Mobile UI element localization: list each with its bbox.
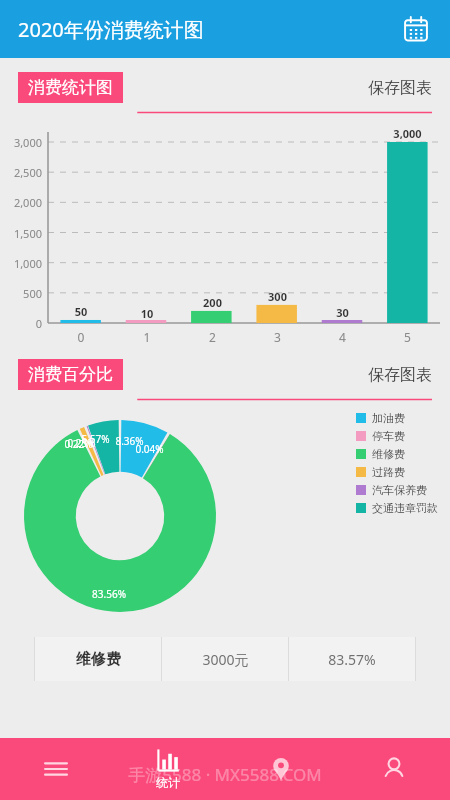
staticText: 过路费 [372,465,405,479]
button[interactable]: 消费统计图 [28,77,113,98]
button[interactable]: 消费百分比 [28,364,113,385]
staticText: 统计 [156,775,180,790]
staticText: 加油费 [372,411,405,425]
staticText: 2,000 [0,195,42,210]
staticText: 3,000 [375,126,440,141]
button[interactable]: Calendar [396,9,436,49]
staticText: 5 [375,329,440,345]
staticText: 83.56% [92,587,126,601]
staticText: 交通违章罚款 [372,501,438,515]
staticText: 保存图表 [368,365,432,385]
staticText: 2,500 [0,165,42,180]
staticText: 0 [0,316,42,331]
staticText: 50 [48,304,114,319]
staticText: 30 [310,305,375,320]
staticText: 0.25% [67,436,96,450]
staticText: 消费统计图 [28,77,113,98]
button[interactable]: Menu [0,738,112,800]
staticText: 3 [245,329,310,345]
staticText: 0.04% [135,442,164,456]
button[interactable]: 维修费 [34,637,416,681]
staticText: 1 [114,329,180,345]
button[interactable]: Profile [337,738,450,800]
staticText: 汽车保养费 [372,483,427,497]
staticText: 500 [0,286,42,301]
staticText: 停车费 [372,429,405,443]
staticText: 83.57% [328,650,376,669]
staticText: 1,500 [0,226,42,241]
button[interactable]: Location [224,738,337,800]
staticText: 0.22% [64,437,93,451]
staticText: 200 [180,295,245,310]
button[interactable]: 保存图表 [368,78,432,98]
staticText: 8.36% [115,434,144,448]
staticText: 3000元 [202,650,249,669]
staticText: 消费百分比 [28,364,113,385]
staticText: 10 [114,306,180,321]
staticText: 3,000 [0,135,42,150]
button[interactable]: 统计 [112,738,224,800]
staticText: 维修费 [76,650,121,669]
staticText: 5.57% [81,432,110,446]
staticText: 保存图表 [368,78,432,98]
button[interactable]: 保存图表 [368,365,432,385]
staticText: 2 [180,329,245,345]
staticText: 300 [245,289,310,304]
staticText: 1,000 [0,256,42,271]
staticText: 0 [48,329,114,345]
staticText: 手游5588 · MX5588.COM [0,763,450,786]
staticText: 维修费 [372,447,405,461]
staticText: 4 [310,329,375,345]
staticText: 2020年份消费统计图 [18,16,204,43]
